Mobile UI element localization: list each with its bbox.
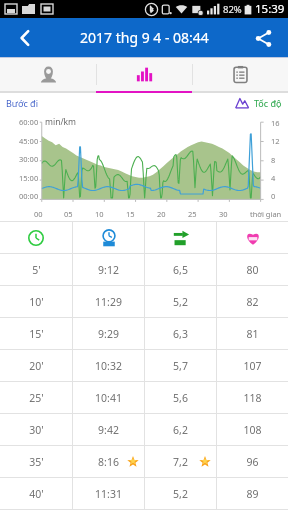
staticText: 11:29 (95, 295, 122, 309)
staticText: 89 (246, 487, 259, 501)
staticText: 15 (126, 209, 135, 219)
button[interactable]: 40' (0, 478, 288, 509)
staticText: 5,7 (173, 359, 188, 373)
staticText: 25' (29, 391, 44, 405)
staticText: 8:16 (98, 455, 119, 469)
button[interactable]: Share (246, 21, 280, 55)
button[interactable]: Average speed (145, 222, 216, 253)
staticText: 0 (271, 191, 276, 201)
staticText: 20 (157, 209, 166, 219)
staticText: 107 (243, 359, 262, 373)
staticText: 10:32 (95, 359, 122, 373)
staticText: 82 (246, 295, 259, 309)
staticText: 30 (219, 209, 228, 219)
staticText: 81 (246, 327, 259, 341)
staticText: 96 (246, 455, 259, 469)
staticText: 6,2 (173, 423, 188, 437)
staticText: 10 (95, 209, 104, 219)
staticText: 108 (243, 423, 262, 437)
staticText: 15' (29, 327, 44, 341)
button[interactable]: 15' (0, 318, 288, 349)
staticText: 15:00 (19, 173, 39, 183)
staticText: 5,2 (173, 295, 188, 309)
staticText: 9:42 (98, 423, 119, 437)
staticText: 8 (271, 155, 276, 165)
staticText: 6,3 (173, 327, 188, 341)
staticText: 30:00 (19, 154, 39, 164)
staticText: 45:00 (19, 136, 39, 146)
staticText: 9:29 (98, 327, 119, 341)
staticText: 12 (271, 136, 280, 146)
button[interactable]: 35' (0, 446, 288, 477)
button[interactable]: 20' (0, 350, 288, 381)
button[interactable]: Tab (0, 58, 96, 91)
staticText: Tốc độ (254, 97, 282, 109)
staticText: 60:00 (19, 117, 39, 127)
staticText: 00:00 (19, 191, 39, 201)
button[interactable]: Back (8, 21, 42, 55)
staticText: 40' (29, 487, 44, 501)
button[interactable]: Average heart rate (217, 222, 288, 253)
button[interactable]: Tab (97, 58, 192, 91)
staticText: 10:41 (95, 391, 122, 405)
staticText: 11:31 (95, 487, 122, 501)
staticText: 6,5 (173, 263, 188, 277)
staticText: Bước đi (6, 97, 38, 109)
button[interactable]: Average pace (73, 222, 144, 253)
staticText: 25 (188, 209, 197, 219)
button[interactable]: 30' (0, 414, 288, 445)
staticText: 2017 thg 9 4 - 08:44 (80, 28, 209, 47)
staticText: min/km (45, 116, 77, 128)
button[interactable]: 10' (0, 286, 288, 317)
staticText: 20' (29, 359, 44, 373)
staticText: 30' (29, 423, 44, 437)
staticText: 05 (64, 209, 73, 219)
staticText: 5,6 (173, 391, 188, 405)
staticText: 80 (246, 263, 259, 277)
staticText: 7,2 (173, 455, 188, 469)
staticText: 15:39 (255, 1, 285, 17)
staticText: 5,2 (173, 487, 188, 501)
staticText: 35' (29, 455, 44, 469)
button[interactable]: 25' (0, 382, 288, 413)
staticText: 9:12 (98, 263, 119, 277)
staticText: 10' (29, 295, 44, 309)
staticText: 118 (243, 391, 262, 405)
staticText: 4 (271, 173, 276, 183)
staticText: thời gian (250, 209, 282, 219)
staticText: 82% (223, 3, 242, 16)
staticText: 00 (34, 209, 43, 219)
button[interactable]: 5' (0, 254, 288, 285)
staticText: 5' (32, 263, 41, 277)
button[interactable]: Tab (193, 58, 288, 91)
button[interactable]: Duration (0, 222, 72, 253)
staticText: 16 (271, 118, 280, 128)
